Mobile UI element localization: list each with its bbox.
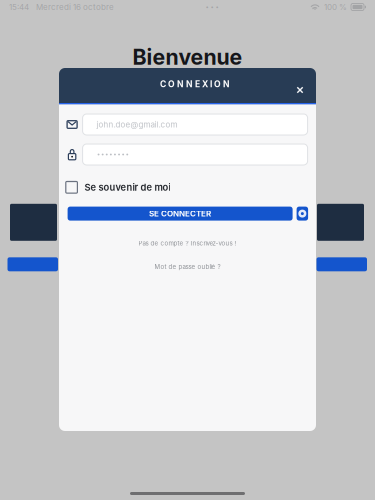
button[interactable]: Paramètres bbox=[297, 207, 308, 221]
button[interactable]: Se souvenir de moi bbox=[66, 181, 170, 193]
button[interactable]: SE CONNECTER bbox=[68, 207, 293, 221]
staticText: 100 % bbox=[324, 2, 347, 12]
staticText: Bienvenue bbox=[132, 44, 242, 70]
staticText: 15:44 bbox=[9, 2, 29, 12]
staticText: SE CONNECTER bbox=[149, 209, 211, 218]
staticText: Pas de compte ? Inscrivez-vous ! bbox=[138, 240, 236, 247]
staticText: • • • bbox=[205, 3, 218, 11]
button[interactable]: Fermer bbox=[291, 81, 309, 99]
staticText: Mercredi 16 octobre bbox=[36, 2, 114, 12]
staticText: Se souvenir de moi bbox=[84, 182, 170, 193]
staticText: john.doe@gmail.com bbox=[97, 120, 178, 129]
button[interactable]: Pas de compte ? Inscrivez-vous ! bbox=[138, 240, 236, 247]
staticText: C O N N E X I O N bbox=[160, 79, 230, 89]
staticText: Mot de passe oublié ? bbox=[154, 263, 220, 270]
button[interactable]: Mot de passe oublié ? bbox=[154, 263, 220, 270]
